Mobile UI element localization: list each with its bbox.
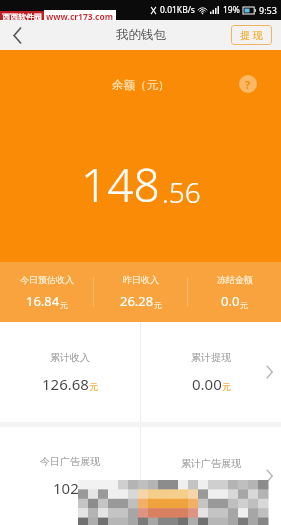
button[interactable]: 今日广告展现 [0, 427, 140, 525]
button[interactable]: 今日预估收入 [0, 274, 93, 310]
staticText: ? [245, 77, 251, 92]
staticText: 累计广告展现 [181, 457, 241, 470]
button[interactable]: 帮助 [239, 75, 257, 93]
button[interactable]: 昨日收入 [94, 274, 187, 310]
button[interactable]: 累计提现 [141, 322, 281, 422]
staticText: 元 [60, 300, 68, 310]
staticText: 26.28 [120, 292, 154, 310]
staticText: 我的钱包 [116, 27, 166, 43]
staticText: 累计提现 [191, 351, 231, 364]
button[interactable]: 提 现 [231, 25, 272, 45]
staticText: 19% [223, 4, 240, 16]
staticText: 元 [154, 300, 162, 310]
staticText: 0.00元 [192, 374, 231, 394]
staticText: 西西软件园 [2, 12, 42, 22]
staticText: 今日预估收入 [20, 274, 74, 285]
staticText: www.cr173.com [46, 11, 114, 23]
staticText: .56 [162, 173, 201, 211]
button[interactable]: 累计收入 [0, 322, 140, 422]
staticText: 148 [81, 153, 160, 216]
staticText: 提 现 [240, 28, 263, 42]
staticText: 冻结金额 [217, 274, 253, 285]
staticText: 0.0 [221, 292, 240, 310]
button[interactable]: 累计广告展现 [141, 427, 281, 525]
staticText: 16.84 [26, 292, 60, 310]
staticText: 余额（元） [112, 78, 170, 92]
button[interactable]: 冻结金额 [188, 274, 281, 310]
button[interactable]: 返回 [0, 20, 34, 50]
staticText: 126.68元 [42, 374, 98, 394]
staticText: 元 [240, 300, 248, 310]
staticText: 今日广告展现 [40, 455, 100, 468]
staticText: 102元 [53, 478, 88, 498]
staticText: 9:53 [259, 4, 277, 16]
staticText: 累计收入 [50, 351, 90, 364]
staticText: 昨日收入 [123, 274, 159, 285]
staticText: 0.01KB/s [160, 4, 195, 16]
